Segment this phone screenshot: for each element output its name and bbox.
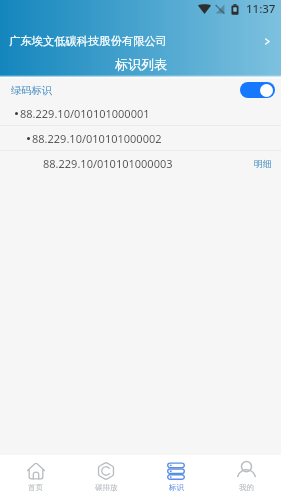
staticText: 88.229.10/010101000002 <box>32 131 162 146</box>
staticText: 首页 <box>28 483 43 492</box>
staticText: 11:37 <box>246 1 276 17</box>
button[interactable]: 88.229.10/010101000003 <box>0 151 281 175</box>
button[interactable]: 碳排放 <box>71 455 141 500</box>
button[interactable]: 我的 <box>211 455 281 500</box>
button[interactable]: 绿码标识开关 <box>240 82 275 98</box>
button[interactable]: 广东埃文低碳科技股份有限公司 <box>0 30 281 52</box>
staticText: 我的 <box>239 483 254 492</box>
staticText: 明细 <box>254 158 272 169</box>
staticText: 88.229.10/010101000003 <box>43 156 173 171</box>
staticText: 广东埃文低碳科技股份有限公司 <box>9 34 168 48</box>
staticText: 88.229.10/010101000001 <box>20 106 150 121</box>
button[interactable]: 标识 <box>141 455 211 500</box>
staticText: 标识 <box>169 483 184 492</box>
button[interactable]: 88.229.10/010101000001 <box>0 101 281 125</box>
button[interactable]: 88.229.10/010101000002 <box>0 126 281 150</box>
button[interactable]: 首页 <box>0 455 71 500</box>
staticText: 碳排放 <box>95 483 118 492</box>
staticText: 标识列表 <box>115 56 167 72</box>
staticText: 绿码标识 <box>11 84 53 97</box>
